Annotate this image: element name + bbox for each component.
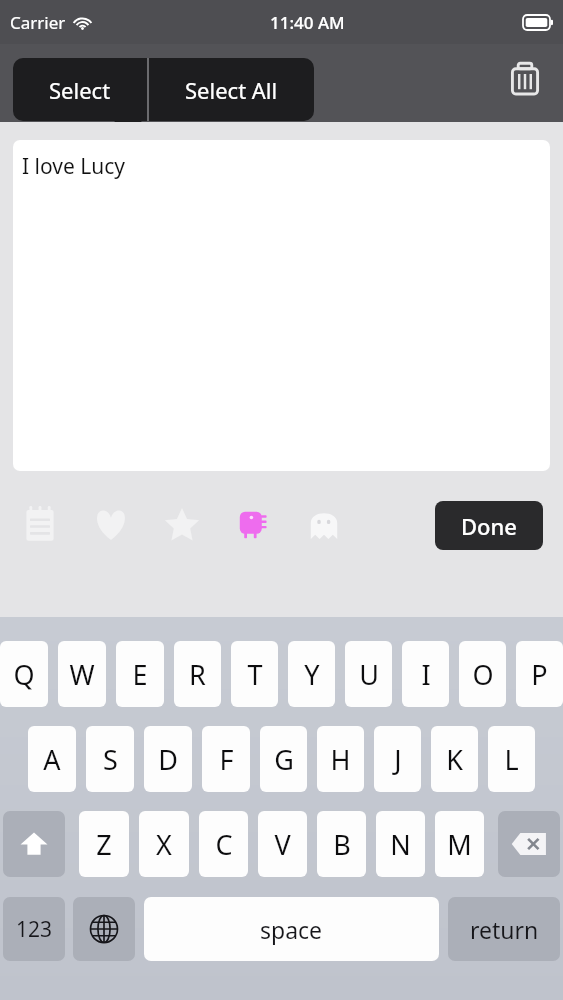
button[interactable]: V xyxy=(258,811,307,877)
button[interactable]: N xyxy=(376,811,425,877)
staticText: 123 xyxy=(16,915,53,944)
button[interactable]: G xyxy=(260,726,307,792)
button[interactable]: Z xyxy=(79,811,129,877)
button[interactable]: Bird xyxy=(229,499,277,551)
button[interactable]: I xyxy=(402,641,449,707)
staticText: S xyxy=(103,741,118,778)
button[interactable]: C xyxy=(199,811,248,877)
staticText: D xyxy=(158,741,178,778)
button[interactable]: Shift xyxy=(3,811,65,877)
staticText: J xyxy=(394,741,402,778)
button[interactable]: F xyxy=(202,726,250,792)
button[interactable]: Y xyxy=(288,641,335,707)
staticText: Y xyxy=(304,656,320,693)
staticText: N xyxy=(390,826,411,863)
button[interactable]: J xyxy=(374,726,421,792)
button[interactable]: Delete xyxy=(495,52,555,108)
staticText: Carrier xyxy=(10,11,66,34)
button[interactable]: return xyxy=(448,897,560,961)
staticText: Z xyxy=(96,826,112,863)
button[interactable]: Delete xyxy=(498,811,560,877)
staticText: Done xyxy=(461,511,517,541)
button[interactable]: 123 xyxy=(3,897,65,961)
staticText: C xyxy=(215,826,233,863)
button[interactable]: space xyxy=(144,897,439,961)
button[interactable]: T xyxy=(231,641,278,707)
button[interactable]: Q xyxy=(0,641,48,707)
button[interactable]: Ghost xyxy=(300,499,348,551)
button[interactable]: Heart xyxy=(87,499,135,551)
staticText: F xyxy=(219,741,234,778)
staticText: X xyxy=(156,826,172,863)
staticText: W xyxy=(69,656,95,693)
staticText: space xyxy=(260,914,323,945)
staticText: I love Lucy xyxy=(22,152,126,181)
button[interactable]: M xyxy=(435,811,484,877)
staticText: T xyxy=(247,656,263,693)
staticText: K xyxy=(446,741,463,778)
staticText: V xyxy=(274,826,291,863)
button[interactable]: Select xyxy=(13,58,147,121)
staticText: L xyxy=(504,741,519,778)
button[interactable]: I love Lucy xyxy=(13,140,550,471)
staticText: U xyxy=(359,656,379,693)
button[interactable]: B xyxy=(317,811,366,877)
button[interactable]: P xyxy=(516,641,563,707)
button[interactable]: E xyxy=(116,641,164,707)
button[interactable]: Change keyboard xyxy=(73,897,135,961)
staticText: G xyxy=(274,741,294,778)
button[interactable]: Star xyxy=(158,499,206,551)
staticText: P xyxy=(531,656,548,693)
button[interactable]: Select All xyxy=(149,58,314,121)
staticText: 11:40 AM xyxy=(270,11,345,34)
button[interactable]: S xyxy=(86,726,134,792)
button[interactable]: Notepad xyxy=(16,499,64,551)
button[interactable]: H xyxy=(317,726,364,792)
button[interactable]: W xyxy=(58,641,106,707)
button[interactable]: D xyxy=(144,726,192,792)
button[interactable]: R xyxy=(174,641,221,707)
button[interactable]: O xyxy=(459,641,506,707)
button[interactable]: K xyxy=(431,726,478,792)
button[interactable]: A xyxy=(28,726,76,792)
staticText: O xyxy=(472,656,494,693)
staticText: Q xyxy=(13,656,35,693)
button[interactable]: Done xyxy=(435,501,543,550)
staticText: return xyxy=(470,914,539,945)
staticText: R xyxy=(189,656,206,693)
staticText: H xyxy=(330,741,351,778)
staticText: E xyxy=(132,656,148,693)
staticText: I xyxy=(421,656,431,693)
staticText: B xyxy=(333,826,351,863)
staticText: Select xyxy=(49,75,111,105)
button[interactable]: L xyxy=(488,726,535,792)
staticText: Select All xyxy=(185,75,278,105)
button[interactable]: U xyxy=(345,641,392,707)
button[interactable]: X xyxy=(139,811,189,877)
staticText: M xyxy=(447,826,472,863)
staticText: A xyxy=(43,741,61,778)
